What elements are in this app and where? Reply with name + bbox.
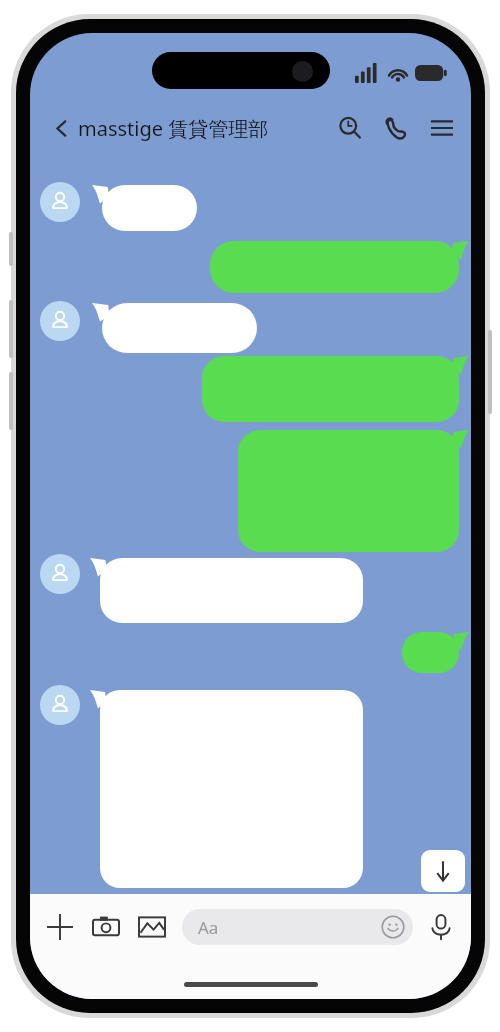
button[interactable]: Gallery [132,907,172,947]
button[interactable] [90,558,363,623]
button[interactable]: Search [333,111,367,145]
button[interactable]: Back [46,113,76,143]
button[interactable]: Call [379,111,413,145]
button[interactable]: Profile [40,182,80,222]
button[interactable]: Profile [40,554,80,594]
button[interactable] [238,430,469,552]
button[interactable]: Voice message [421,907,461,947]
button[interactable] [202,356,469,422]
button[interactable] [90,690,363,888]
staticText: Aa [198,916,219,939]
button[interactable] [402,632,469,673]
button[interactable]: Profile [40,301,80,341]
button[interactable]: Menu [425,111,459,145]
button[interactable]: Profile [40,685,80,725]
button[interactable]: Scroll to bottom [421,850,465,892]
button[interactable]: Camera [86,907,126,947]
button[interactable] [92,185,197,231]
button[interactable]: Aa [182,909,413,945]
button[interactable] [210,241,469,293]
button[interactable] [92,303,257,353]
staticText: masstige 賃貸管理部 [78,115,269,142]
button[interactable]: Add [40,907,80,947]
